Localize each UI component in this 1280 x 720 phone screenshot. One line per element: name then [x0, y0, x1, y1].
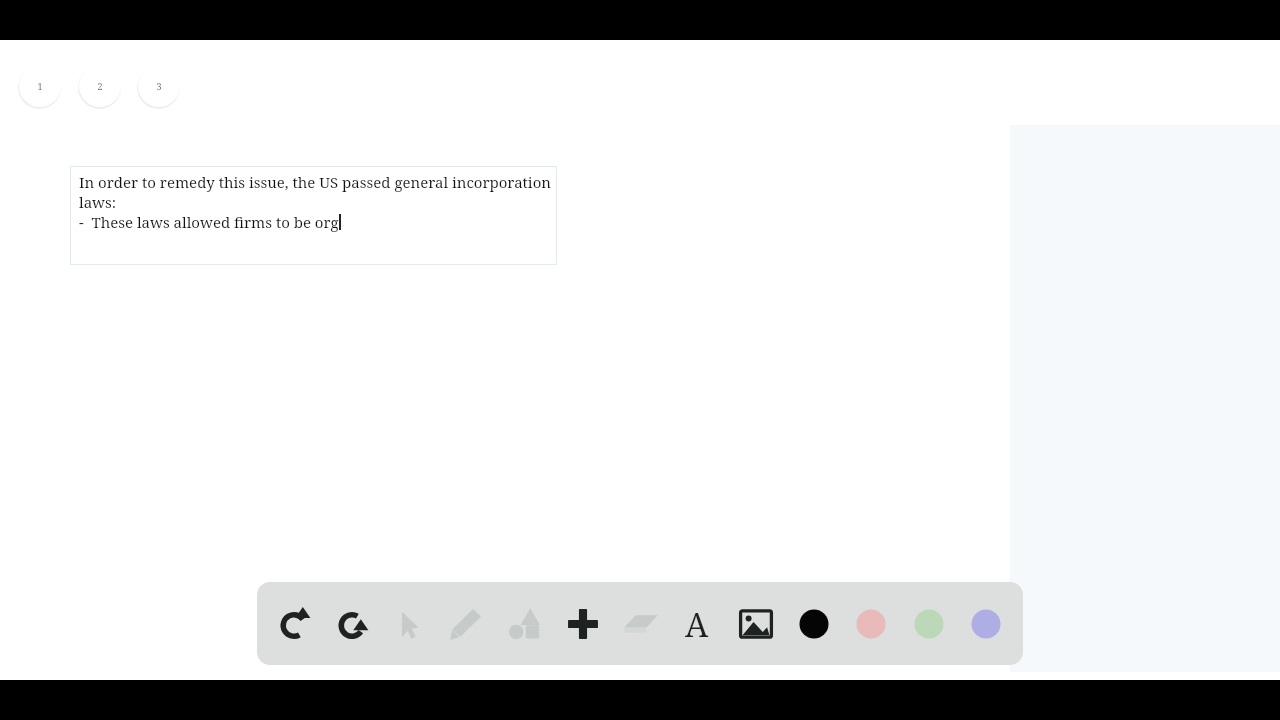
button[interactable]: Redo [327, 599, 377, 649]
button[interactable]: Black colour [789, 599, 839, 649]
button[interactable]: Eraser [616, 599, 666, 649]
button[interactable]: Select [384, 599, 434, 649]
button[interactable]: Text [672, 599, 722, 649]
staticText: 1 [37, 80, 43, 92]
staticText: 3 [156, 80, 162, 92]
staticText: - These laws allowed firms to be org [79, 212, 339, 232]
button[interactable]: Add [558, 599, 608, 649]
button[interactable]: 1 [19, 65, 61, 107]
staticText: A [685, 602, 709, 646]
button[interactable]: 2 [79, 65, 121, 107]
button[interactable]: Draw [441, 599, 491, 649]
button[interactable]: In order to remedy this issue, the US pa… [70, 166, 557, 265]
staticText: 2 [97, 80, 103, 92]
button[interactable]: Insert image [731, 599, 781, 649]
staticText: In order to remedy this issue, the US pa… [79, 172, 566, 212]
button[interactable]: Purple colour [961, 599, 1011, 649]
button[interactable]: Green colour [904, 599, 954, 649]
button[interactable]: Pink colour [846, 599, 896, 649]
button[interactable]: 3 [138, 65, 180, 107]
button[interactable]: Undo [269, 599, 319, 649]
button[interactable]: Shapes [500, 599, 550, 649]
